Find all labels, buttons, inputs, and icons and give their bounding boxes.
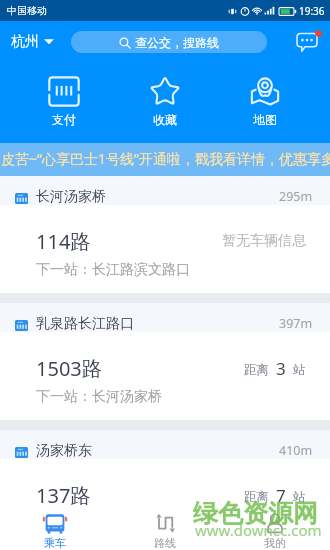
staticText: 410m	[279, 442, 313, 459]
staticText: 中国移动	[7, 4, 47, 17]
staticText: 295m	[279, 188, 313, 205]
button[interactable]: 长河汤家桥	[0, 176, 330, 293]
button[interactable]: 皮苦~“心享巴士1号线”开通啦，戳我看详情，优惠享多	[0, 143, 330, 176]
staticText: 地图	[253, 112, 277, 127]
staticText: 皮苦~“心享巴士1号线”开通啦，戳我看详情，优惠享多	[1, 149, 330, 168]
staticText: 绿色资源网	[193, 498, 318, 529]
button[interactable]: 查公交，搜路线	[71, 31, 267, 53]
staticText: 137路	[36, 482, 91, 509]
staticText: 杭州	[11, 33, 39, 51]
staticText: 下一站：长江路滨文路口	[36, 261, 190, 279]
button[interactable]: 乘车	[15, 505, 95, 550]
staticText: 397m	[279, 315, 313, 332]
staticText: 下一站：长河汤家桥	[36, 388, 162, 406]
staticText: 站	[293, 489, 306, 505]
staticText: 站	[293, 362, 306, 378]
staticText: 3	[276, 357, 286, 380]
button[interactable]: 我的	[235, 505, 315, 550]
button[interactable]: 支付	[29, 62, 99, 143]
staticText: 114路	[36, 228, 91, 255]
button[interactable]: 地图	[230, 62, 300, 143]
staticText: 汤家桥东	[36, 442, 92, 460]
button[interactable]: 路线	[125, 505, 205, 550]
staticText: 7	[276, 484, 286, 507]
button[interactable]: 杭州	[0, 21, 62, 62]
staticText: 乳泉路长江路口	[36, 315, 134, 333]
staticText: 支付	[52, 112, 76, 127]
staticText: 我的	[264, 536, 286, 550]
button[interactable]: 汤家桥东	[0, 430, 330, 547]
staticText: 收藏	[153, 112, 177, 127]
button[interactable]: Messages	[288, 21, 330, 62]
staticText: 距离	[244, 362, 269, 378]
staticText: 乘车	[44, 536, 66, 550]
staticText: 长河汤家桥	[36, 188, 106, 206]
button[interactable]: 收藏	[130, 62, 200, 143]
staticText: 距离	[244, 489, 269, 505]
staticText: 暂无车辆信息	[222, 232, 306, 250]
staticText: 1503路	[36, 355, 102, 382]
staticText: www.downcc.com	[195, 520, 322, 540]
button[interactable]: 乳泉路长江路口	[0, 303, 330, 420]
staticText: 19:36	[299, 4, 325, 18]
staticText: 路线	[154, 536, 176, 550]
staticText: 查公交，搜路线	[135, 35, 219, 50]
